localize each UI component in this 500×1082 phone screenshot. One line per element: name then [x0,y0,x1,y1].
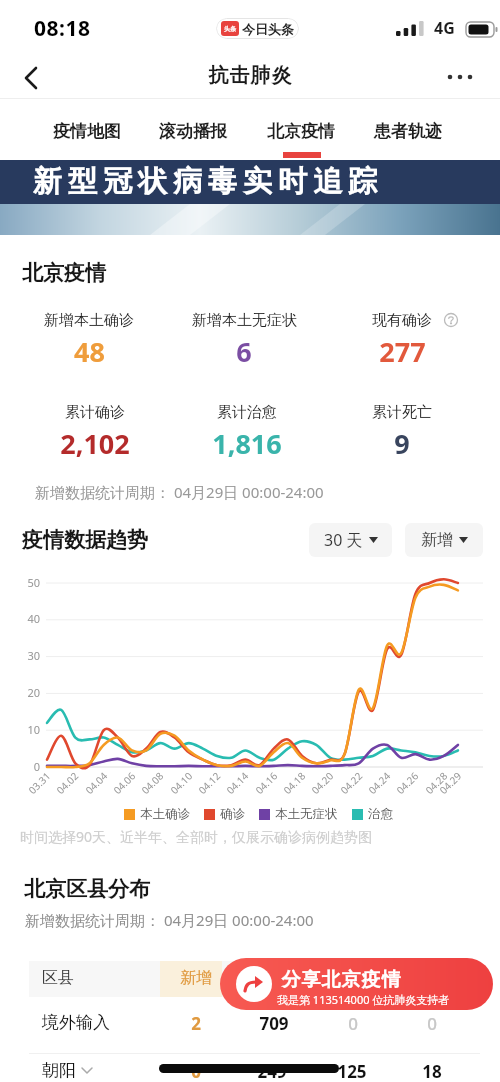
staticText: 08:18 [34,14,91,43]
staticText: 本土无症状 [275,806,338,822]
staticText: 0 [427,1012,437,1035]
staticText: 04.26 [393,769,421,796]
staticText: 新增数据统计周期： 04月29日 00:00-24:00 [35,482,324,502]
staticText: 北京疫情 [22,260,106,286]
staticText: 0 [348,1012,358,1035]
staticText: 累计确诊 [65,403,125,422]
staticText: 患者轨迹 [374,121,442,142]
staticText: 新增本土无症状 [192,311,297,330]
staticText: 0 [191,1060,201,1082]
staticText: 新型冠状病毒实时追踪 [30,163,380,200]
staticText: 709 [259,1012,289,1035]
staticText: 50 [14,575,40,590]
staticText: 4G [434,17,455,39]
staticText: 30 [14,648,40,663]
staticText: 疫情数据趋势 [22,527,148,553]
button[interactable]: 疫情地图 [37,114,137,148]
staticText: 04.02 [53,769,81,796]
staticText: 时间选择90天、近半年、全部时，仅展示确诊病例趋势图 [20,827,373,846]
staticText: 头条 [224,25,236,33]
staticText: 抗击肺炎 [208,63,292,88]
staticText: 1,816 [212,425,282,462]
staticText: 2,102 [60,425,130,462]
staticText: 北京区县分布 [24,876,150,902]
button[interactable]: 患者轨迹 [358,114,458,148]
staticText: 新增 [180,968,212,988]
staticText: 04.22 [337,769,365,796]
staticText: 04.29 [436,769,464,796]
staticText: 分享北京疫情 [281,968,401,992]
staticText: 125 [337,1060,367,1082]
staticText: 境外输入 [42,1012,110,1033]
button[interactable]: 新增 [405,523,483,557]
staticText: 新增 [421,530,453,550]
staticText: 04.18 [280,769,308,796]
staticText: 249 [257,1060,287,1082]
staticText: 我是第 113514000 位抗肺炎支持者 [277,992,450,1007]
staticText: 277 [379,333,426,370]
staticText: 区县 [42,968,74,988]
staticText: 滚动播报 [159,121,227,142]
staticText: 04.14 [223,769,251,796]
staticText: 04.10 [167,769,195,796]
staticText: 6 [236,333,252,370]
staticText: 04.04 [82,769,110,796]
staticText: 0 [14,759,40,774]
staticText: 确诊 [220,806,245,822]
staticText: 40 [14,611,40,626]
staticText: 04.12 [195,769,223,796]
staticText: 04.06 [110,769,138,796]
staticText: 04.28 [422,769,450,796]
staticText: 04.08 [138,769,166,796]
staticText: 18 [422,1060,442,1082]
staticText: 累计治愈 [217,403,277,422]
staticText: 朝阳 [42,1060,76,1081]
staticText: 北京疫情 [267,121,335,142]
staticText: 疫情地图 [53,121,121,142]
staticText: 48 [74,333,105,370]
staticText: 30 天 [324,529,363,551]
staticText: 20 [14,685,40,700]
staticText: 04.20 [308,769,336,796]
staticText: 治愈 [368,806,393,822]
button[interactable] [446,69,476,85]
staticText: 现有确诊 [372,311,432,330]
button[interactable]: 北京疫情 [251,114,351,148]
staticText: 04.16 [252,769,280,796]
button[interactable]: 头条 [216,18,299,39]
staticText: 新增本土确诊 [44,311,134,330]
button[interactable]: 30 天 [309,523,392,557]
button[interactable]: 滚动播报 [143,114,243,148]
staticText: 今日头条 [242,21,294,37]
button[interactable] [0,1008,500,1046]
staticText: 04.24 [365,769,393,796]
staticText: 新增数据统计周期： 04月29日 00:00-24:00 [25,910,314,930]
staticText: 9 [394,425,410,462]
staticText: 2 [191,1012,201,1035]
staticText: 10 [14,722,40,737]
staticText: 累计死亡 [372,403,432,422]
button[interactable]: 分享北京疫情 [220,958,493,1010]
button[interactable] [24,67,38,89]
staticText: 本土确诊 [140,806,190,822]
staticText: 03.31 [25,769,53,796]
